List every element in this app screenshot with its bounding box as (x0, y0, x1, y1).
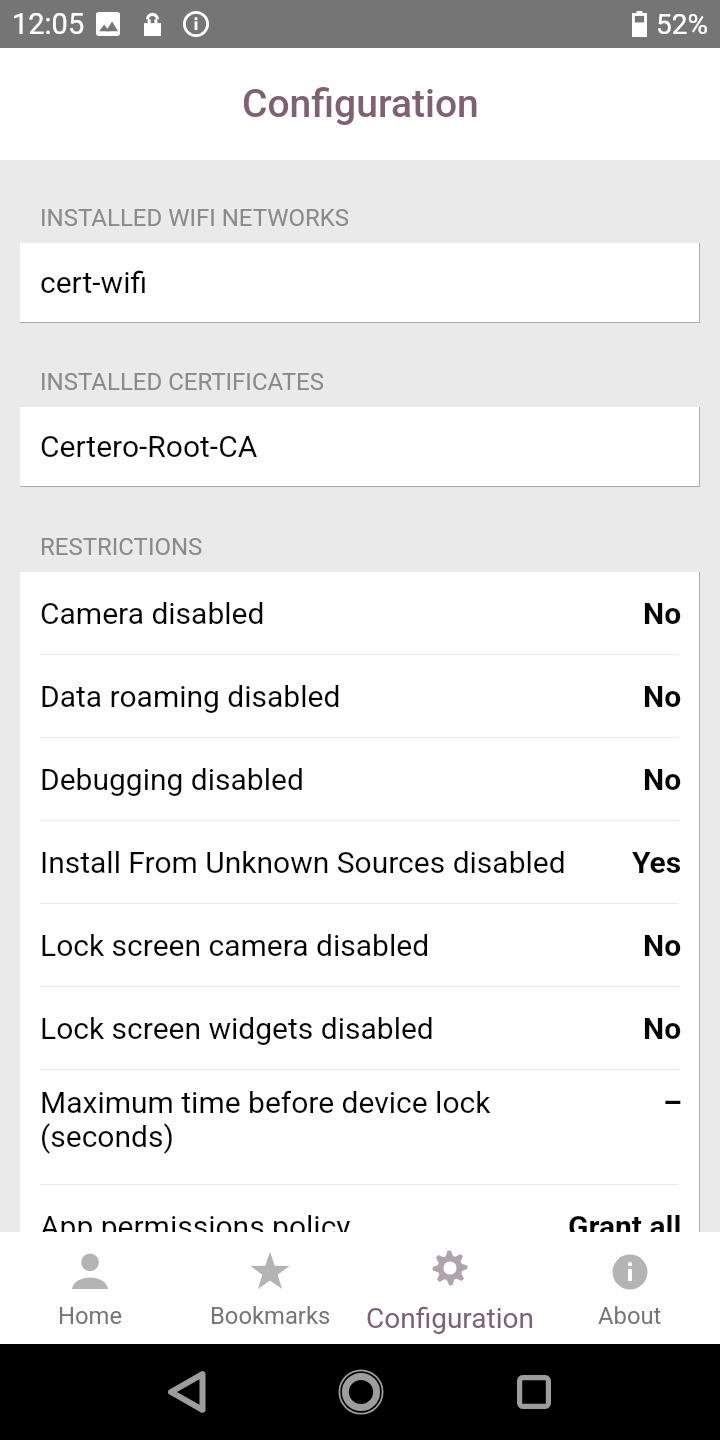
staticText: Home (58, 1302, 123, 1330)
staticText: App permissions policy (40, 1209, 351, 1232)
staticText: – (663, 1085, 682, 1120)
staticText: Install From Unknown Sources disabled (40, 845, 566, 880)
button[interactable]: Install From Unknown Sources disabled (20, 821, 699, 904)
button[interactable]: Data roaming disabled (20, 655, 699, 738)
button[interactable]: Recents (447, 1344, 620, 1440)
staticText: RESTRICTIONS (40, 533, 203, 561)
button[interactable]: Configuration (360, 1232, 540, 1344)
staticText: No (643, 596, 682, 631)
staticText: Maximum time before device lock (seconds… (40, 1085, 491, 1155)
staticText: 12:05 (12, 7, 85, 41)
button[interactable]: Home (274, 1344, 447, 1440)
button[interactable]: App permissions policy (20, 1185, 699, 1232)
button[interactable]: Camera disabled (20, 572, 699, 655)
staticText: No (643, 762, 682, 797)
staticText: Certero-Root-CA (40, 429, 258, 464)
button[interactable]: cert-wifi (20, 243, 699, 322)
staticText: INSTALLED WIFI NETWORKS (40, 204, 350, 232)
button[interactable]: Certero-Root-CA (20, 407, 699, 486)
staticText: Data roaming disabled (40, 679, 341, 714)
button[interactable]: Home (0, 1232, 180, 1344)
button[interactable]: Bookmarks (180, 1232, 360, 1344)
button[interactable]: About (540, 1232, 720, 1344)
button[interactable]: Lock screen widgets disabled (20, 987, 699, 1070)
staticText: Camera disabled (40, 596, 265, 631)
staticText: No (643, 679, 682, 714)
staticText: Yes (632, 845, 682, 880)
staticText: Lock screen widgets disabled (40, 1011, 434, 1046)
staticText: Configuration (242, 81, 479, 127)
button[interactable]: Maximum time before device lock (seconds… (20, 1070, 699, 1185)
button[interactable]: Debugging disabled (20, 738, 699, 821)
button[interactable]: Back (100, 1344, 274, 1440)
staticText: 52% (656, 8, 708, 41)
staticText: Lock screen camera disabled (40, 928, 430, 963)
staticText: About (598, 1302, 662, 1330)
staticText: Configuration (366, 1302, 534, 1335)
staticText: No (643, 1011, 682, 1046)
staticText: No (643, 928, 682, 963)
staticText: Grant all (568, 1209, 682, 1232)
staticText: cert-wifi (40, 265, 148, 300)
staticText: Debugging disabled (40, 762, 304, 797)
button[interactable]: Lock screen camera disabled (20, 904, 699, 987)
staticText: INSTALLED CERTIFICATES (40, 368, 324, 396)
staticText: Bookmarks (210, 1302, 331, 1330)
